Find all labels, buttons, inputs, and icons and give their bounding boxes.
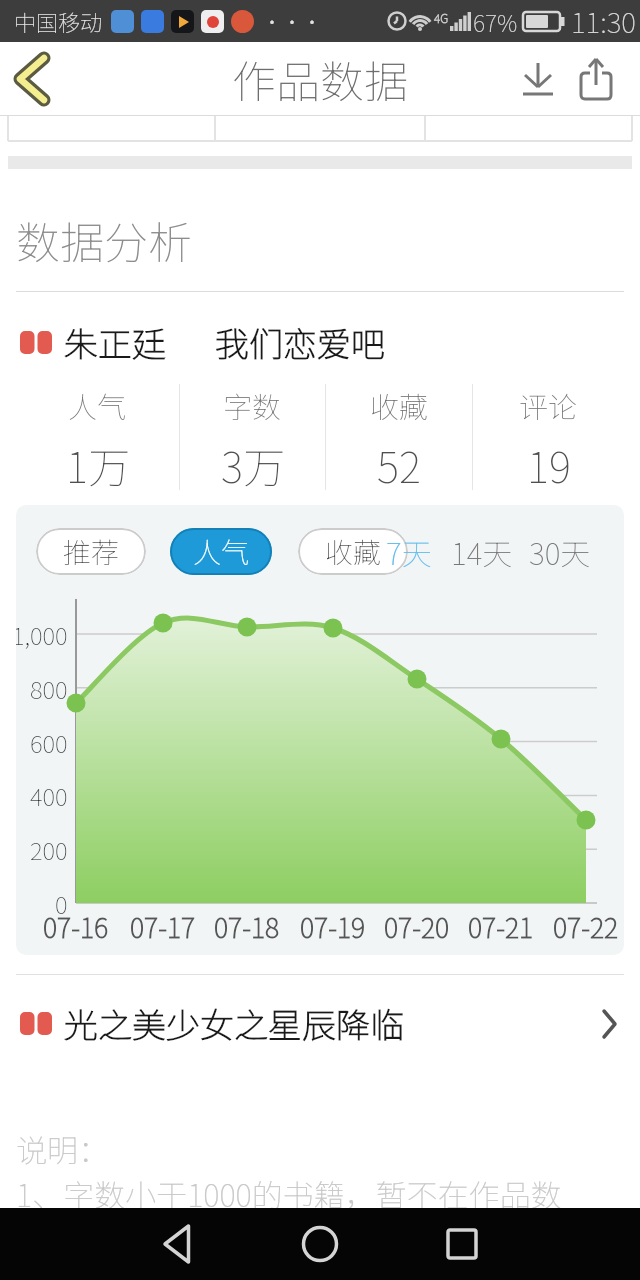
button[interactable] (284, 1208, 356, 1280)
button[interactable] (516, 42, 560, 116)
button[interactable] (574, 42, 618, 116)
staticText: ··· (262, 7, 322, 36)
staticText: 字数 (223, 384, 282, 426)
staticText: 朱正廷 (64, 318, 166, 367)
staticText: 评论 (519, 384, 578, 426)
staticText: 作品数据 (232, 47, 408, 111)
button[interactable] (141, 1208, 213, 1280)
staticText: 收藏 (325, 531, 382, 572)
staticText: 人气 (193, 531, 250, 572)
staticText: 07-17 (130, 907, 196, 946)
staticText: 收藏 (370, 384, 429, 426)
staticText: 1万 (66, 434, 130, 490)
staticText: 67% (473, 5, 518, 38)
staticText: 07-19 (300, 907, 366, 946)
staticText: 1,000 (16, 617, 68, 652)
button[interactable] (426, 1208, 498, 1280)
staticText: 中国移动 (14, 5, 103, 37)
staticText: 人气 (68, 384, 127, 426)
staticText: 07-18 (214, 907, 280, 946)
button[interactable]: 7天 (386, 530, 432, 573)
button[interactable]: 14天 (451, 530, 513, 573)
button[interactable]: 人气 (170, 528, 272, 575)
staticText: 光之美少女之星辰降临 (64, 999, 404, 1048)
staticText: 400 (30, 778, 68, 813)
staticText: 1、字数小于1000的书籍，暂不在作品数 (16, 1171, 562, 1216)
staticText: 11:30 (571, 1, 636, 42)
staticText: 19 (527, 434, 571, 490)
staticText: 200 (30, 832, 68, 867)
staticText: 07-22 (553, 907, 619, 946)
button[interactable]: 光之美少女之星辰降临 (20, 999, 618, 1048)
button[interactable]: 30天 (529, 530, 591, 573)
button[interactable] (0, 42, 64, 116)
staticText: 我们恋爱吧 (215, 318, 385, 367)
staticText: 说明： (16, 1126, 109, 1171)
staticText: 3万 (221, 434, 285, 490)
staticText: 800 (30, 671, 68, 706)
staticText: 07-16 (43, 907, 109, 946)
staticText: 推荐 (63, 531, 120, 572)
staticText: 07-20 (384, 907, 450, 946)
staticText: 52 (377, 434, 421, 490)
button[interactable]: 推荐 (36, 528, 146, 575)
button[interactable]: 朱正廷 (20, 318, 640, 367)
staticText: 600 (30, 725, 68, 760)
button[interactable]: 收藏 (298, 528, 408, 575)
staticText: 07-21 (468, 907, 534, 946)
staticText: 4G (434, 9, 449, 26)
staticText: 0 (55, 886, 68, 921)
staticText: 数据分析 (16, 208, 192, 272)
